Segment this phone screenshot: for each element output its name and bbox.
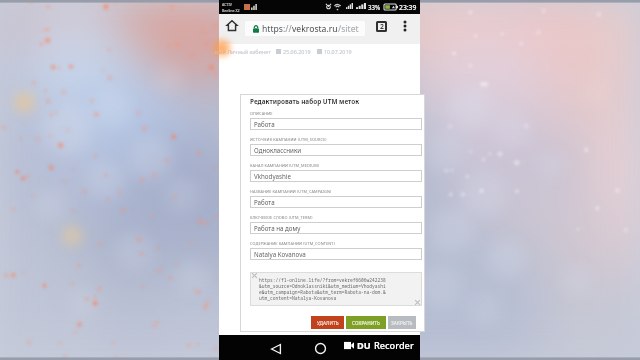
button[interactable]: Home (222, 16, 241, 35)
staticText: Beeline X2 (222, 8, 240, 13)
staticText: https (262, 23, 283, 35)
staticText: &utm_source=Odnoklassniki&utm_medium=Vho… (259, 283, 386, 289)
button[interactable]: УДАЛИТЬ (311, 316, 344, 329)
staticText: e&utm_campaign=Rabota&utm_term=Rabota-na… (259, 289, 386, 295)
button[interactable]: Работа (250, 196, 422, 208)
staticText: 25.06.2019 (283, 48, 311, 55)
staticText: :// (283, 23, 292, 35)
staticText: Редактировать набор UTM меток (250, 97, 360, 106)
button[interactable]: СОХРАНИТЬ (346, 316, 386, 329)
staticText: DU (357, 339, 371, 352)
button[interactable]: Vkhodyashie (250, 170, 422, 182)
button[interactable]: Одноклассники (250, 144, 422, 156)
staticText: ИСТОЧНИК КАМПАНИИ (UTM_SOURCE) (250, 137, 327, 142)
staticText: СОДЕРЖАНИЕ КАМПАНИИ (UTM_CONTENT) (250, 241, 335, 246)
button[interactable]: https (245, 21, 365, 36)
staticText: 33% (368, 3, 381, 11)
staticText: Vkhodyashie (254, 172, 291, 180)
staticText: ACTIV (222, 2, 232, 7)
staticText: 2 (380, 22, 384, 31)
staticText: ОПИСАНИЕ (250, 111, 273, 116)
staticText: Natalya Kovanova (254, 250, 306, 258)
staticText: СОХРАНИТЬ (352, 320, 380, 326)
staticText: utm_content=Natalya-Kovanova (259, 295, 337, 301)
button[interactable]: https://fl-online.life/?from=vekref6606w… (250, 272, 422, 306)
button[interactable]: ЗАКРЫТЬ (388, 316, 416, 329)
button[interactable]: Работа (250, 118, 422, 130)
button[interactable]: Back (265, 338, 286, 359)
staticText: КАНАЛ КАМПАНИИ (UTM_MEDIUM) (250, 163, 320, 168)
button[interactable]: More options (395, 16, 415, 36)
staticText: Работа на дому (254, 224, 301, 232)
staticText: Одноклассники (254, 146, 302, 154)
staticText: 10.07.2019 (324, 48, 352, 55)
staticText: vekrosta.ru (292, 23, 338, 35)
staticText: Работа (254, 198, 275, 206)
staticText: КЛЮЧЕВОЕ СЛОВО (UTM_TERM) (250, 215, 313, 220)
staticText: /sitet (338, 23, 359, 35)
staticText: УДАЛИТЬ (317, 320, 339, 326)
button[interactable]: Open tabs (371, 16, 391, 36)
staticText: https://fl-online.life/?from=vekref6606w… (259, 277, 386, 283)
staticText: НАЗВАНИЕ КАМПАНИИ (UTM_CAMPAIGN) (250, 189, 332, 194)
staticText: ЗАКРЫТЬ (391, 320, 413, 326)
staticText: ный Личный кабинет (215, 48, 271, 55)
button[interactable]: Home (310, 338, 331, 359)
staticText: Recorder (374, 339, 414, 352)
staticText: Работа (254, 120, 275, 128)
button[interactable]: Работа на дому (250, 222, 422, 234)
staticText: 23:39 (399, 3, 417, 12)
button[interactable]: Natalya Kovanova (250, 248, 422, 260)
